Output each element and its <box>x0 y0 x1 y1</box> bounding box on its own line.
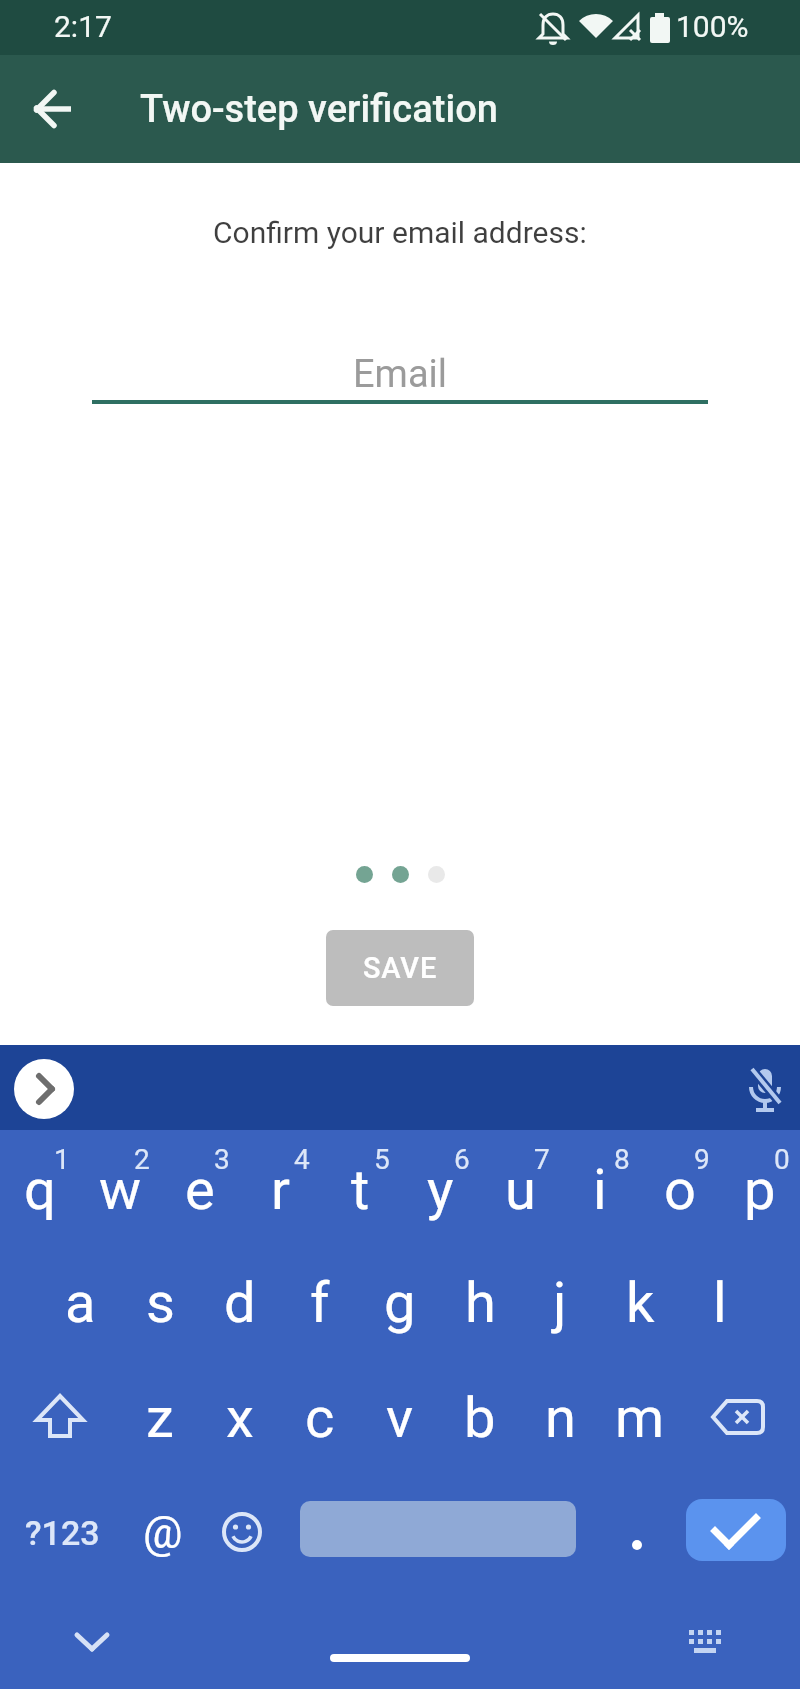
button[interactable]: l <box>680 1245 760 1360</box>
button[interactable]: e <box>160 1130 240 1245</box>
staticText: t <box>351 1157 370 1223</box>
button[interactable]: m <box>600 1360 680 1475</box>
staticText: 5 <box>374 1143 390 1176</box>
button[interactable]: q <box>0 1130 80 1245</box>
staticText: m <box>615 1385 665 1451</box>
staticText: k <box>626 1270 655 1336</box>
button[interactable] <box>576 1475 686 1590</box>
staticText: w <box>99 1157 142 1223</box>
staticText: 8 <box>614 1143 630 1176</box>
button[interactable]: y <box>400 1130 480 1245</box>
staticText: @ <box>143 1507 183 1559</box>
staticText: Confirm your email address: <box>213 215 587 250</box>
button[interactable] <box>740 1065 790 1115</box>
staticText: b <box>464 1385 496 1451</box>
button[interactable]: w <box>80 1130 160 1245</box>
staticText: c <box>305 1385 335 1451</box>
staticText: 2 <box>134 1143 150 1176</box>
button[interactable]: r <box>240 1130 320 1245</box>
staticText: e <box>185 1157 215 1223</box>
button[interactable]: v <box>360 1360 440 1475</box>
staticText: 2:17 <box>54 9 112 44</box>
staticText: 7 <box>534 1143 550 1176</box>
button[interactable]: ?123 <box>0 1475 125 1590</box>
staticText: 3 <box>214 1143 230 1176</box>
staticText: s <box>146 1270 175 1336</box>
button[interactable]: p <box>720 1130 800 1245</box>
button[interactable]: d <box>200 1245 280 1360</box>
button[interactable]: a <box>40 1245 120 1360</box>
staticText: q <box>24 1157 56 1223</box>
staticText: y <box>427 1157 454 1223</box>
button[interactable]: n <box>520 1360 600 1475</box>
staticText: n <box>545 1385 576 1451</box>
staticText: u <box>505 1157 536 1223</box>
button[interactable]: c <box>280 1360 360 1475</box>
button[interactable] <box>14 1059 74 1119</box>
staticText: ?123 <box>25 1513 100 1553</box>
staticText: 1 <box>54 1143 70 1176</box>
staticText: i <box>593 1157 607 1223</box>
button[interactable] <box>0 1360 120 1475</box>
staticText: l <box>713 1270 727 1336</box>
button[interactable]: o <box>640 1130 720 1245</box>
staticText: 6 <box>454 1143 470 1176</box>
button[interactable] <box>200 1475 285 1590</box>
staticText: SAVE <box>363 951 438 985</box>
staticText: g <box>384 1270 416 1336</box>
staticText: a <box>65 1270 96 1336</box>
staticText: 0 <box>774 1143 790 1176</box>
staticText: r <box>271 1157 290 1223</box>
staticText: d <box>224 1270 256 1336</box>
staticText: v <box>386 1385 414 1451</box>
button[interactable]: i <box>560 1130 640 1245</box>
staticText: 100% <box>676 9 749 44</box>
staticText: z <box>146 1385 174 1451</box>
button[interactable]: x <box>200 1360 280 1475</box>
button[interactable]: Email <box>92 352 708 404</box>
staticText: p <box>744 1157 776 1223</box>
button[interactable] <box>300 1501 576 1557</box>
staticText: f <box>310 1270 330 1336</box>
button[interactable]: k <box>600 1245 680 1360</box>
button[interactable]: h <box>440 1245 520 1360</box>
button[interactable]: t <box>320 1130 400 1245</box>
staticText: 9 <box>694 1143 710 1176</box>
button[interactable] <box>683 1620 729 1664</box>
button[interactable] <box>70 1620 114 1664</box>
staticText: x <box>226 1385 254 1451</box>
button[interactable]: @ <box>125 1475 200 1590</box>
button[interactable] <box>686 1499 786 1561</box>
button[interactable]: z <box>120 1360 200 1475</box>
staticText: 4 <box>294 1143 310 1176</box>
button[interactable]: SAVE <box>326 930 474 1006</box>
button[interactable] <box>25 79 85 139</box>
button[interactable]: b <box>440 1360 520 1475</box>
staticText: Email <box>353 352 448 397</box>
button[interactable] <box>680 1360 800 1475</box>
staticText: h <box>465 1270 496 1336</box>
staticText: j <box>553 1270 567 1336</box>
button[interactable]: j <box>520 1245 600 1360</box>
staticText: o <box>664 1157 696 1223</box>
button[interactable]: f <box>280 1245 360 1360</box>
button[interactable]: g <box>360 1245 440 1360</box>
staticText: Two-step verification <box>140 87 498 132</box>
button[interactable]: s <box>120 1245 200 1360</box>
button[interactable]: u <box>480 1130 560 1245</box>
